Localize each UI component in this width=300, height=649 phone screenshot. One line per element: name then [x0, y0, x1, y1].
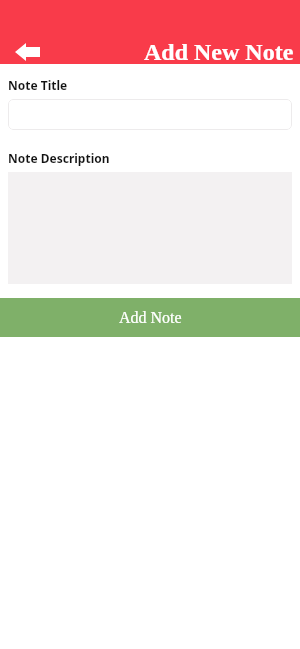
button[interactable]	[8, 99, 292, 130]
staticText: Note Description	[8, 150, 110, 166]
staticText: Add New Note	[144, 39, 294, 66]
button[interactable]: Add Note	[0, 298, 300, 337]
staticText: Note Title	[8, 77, 68, 93]
staticText: Add Note	[119, 309, 182, 327]
button[interactable]: Back	[4, 32, 52, 64]
